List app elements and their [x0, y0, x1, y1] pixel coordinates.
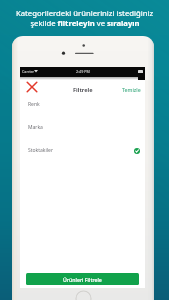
- button[interactable]: Marka: [20, 116, 145, 139]
- button[interactable]: Stoktakiler: [20, 139, 145, 162]
- button[interactable]: Ürünleri Filtrele: [26, 273, 139, 285]
- staticText: şekilde filtreleyin ve sıralayın: [30, 18, 140, 28]
- staticText: 2:49 PM: [76, 69, 90, 74]
- staticText: Temizle: [122, 86, 141, 93]
- staticText: Marka: [28, 124, 43, 131]
- staticText: Carrier: [22, 69, 34, 74]
- staticText: Filtrele: [73, 86, 93, 94]
- staticText: Renk: [28, 101, 40, 108]
- staticText: Kategorilerdeki ürünlerinizi istediğiniz: [16, 8, 153, 18]
- button[interactable]: Renk: [20, 93, 145, 116]
- button[interactable]: Temizle: [122, 86, 141, 93]
- button[interactable]: Kapat: [26, 81, 38, 93]
- staticText: Stoktakiler: [28, 147, 53, 154]
- staticText: Ürünleri Filtrele: [63, 276, 102, 283]
